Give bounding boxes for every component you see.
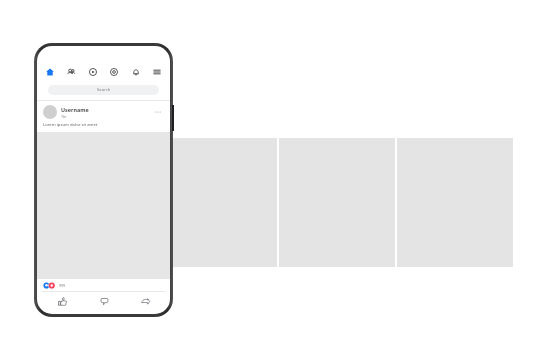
button[interactable]: Search	[48, 85, 159, 95]
button[interactable]: Like	[45, 292, 79, 310]
button[interactable]: Menu	[150, 65, 164, 79]
button[interactable]: Home	[43, 65, 57, 79]
button[interactable]: Comment	[87, 292, 121, 310]
button[interactable]: Watch	[86, 65, 100, 79]
button[interactable]: Marketplace	[107, 65, 121, 79]
button[interactable]: Friends	[64, 65, 78, 79]
staticText: Search	[97, 87, 111, 93]
button[interactable]: More options	[152, 106, 164, 118]
button[interactable]: 999	[43, 279, 66, 291]
button[interactable]: Notifications	[129, 65, 143, 79]
staticText: 999	[59, 283, 66, 288]
staticText: Lorem ipsum dolor sit amet	[43, 122, 98, 128]
button[interactable]: Profile photo	[43, 105, 57, 119]
button[interactable]	[160, 138, 277, 267]
staticText: Username	[61, 106, 89, 113]
button[interactable]: Share	[128, 292, 162, 310]
staticText: 1hr	[61, 114, 67, 119]
